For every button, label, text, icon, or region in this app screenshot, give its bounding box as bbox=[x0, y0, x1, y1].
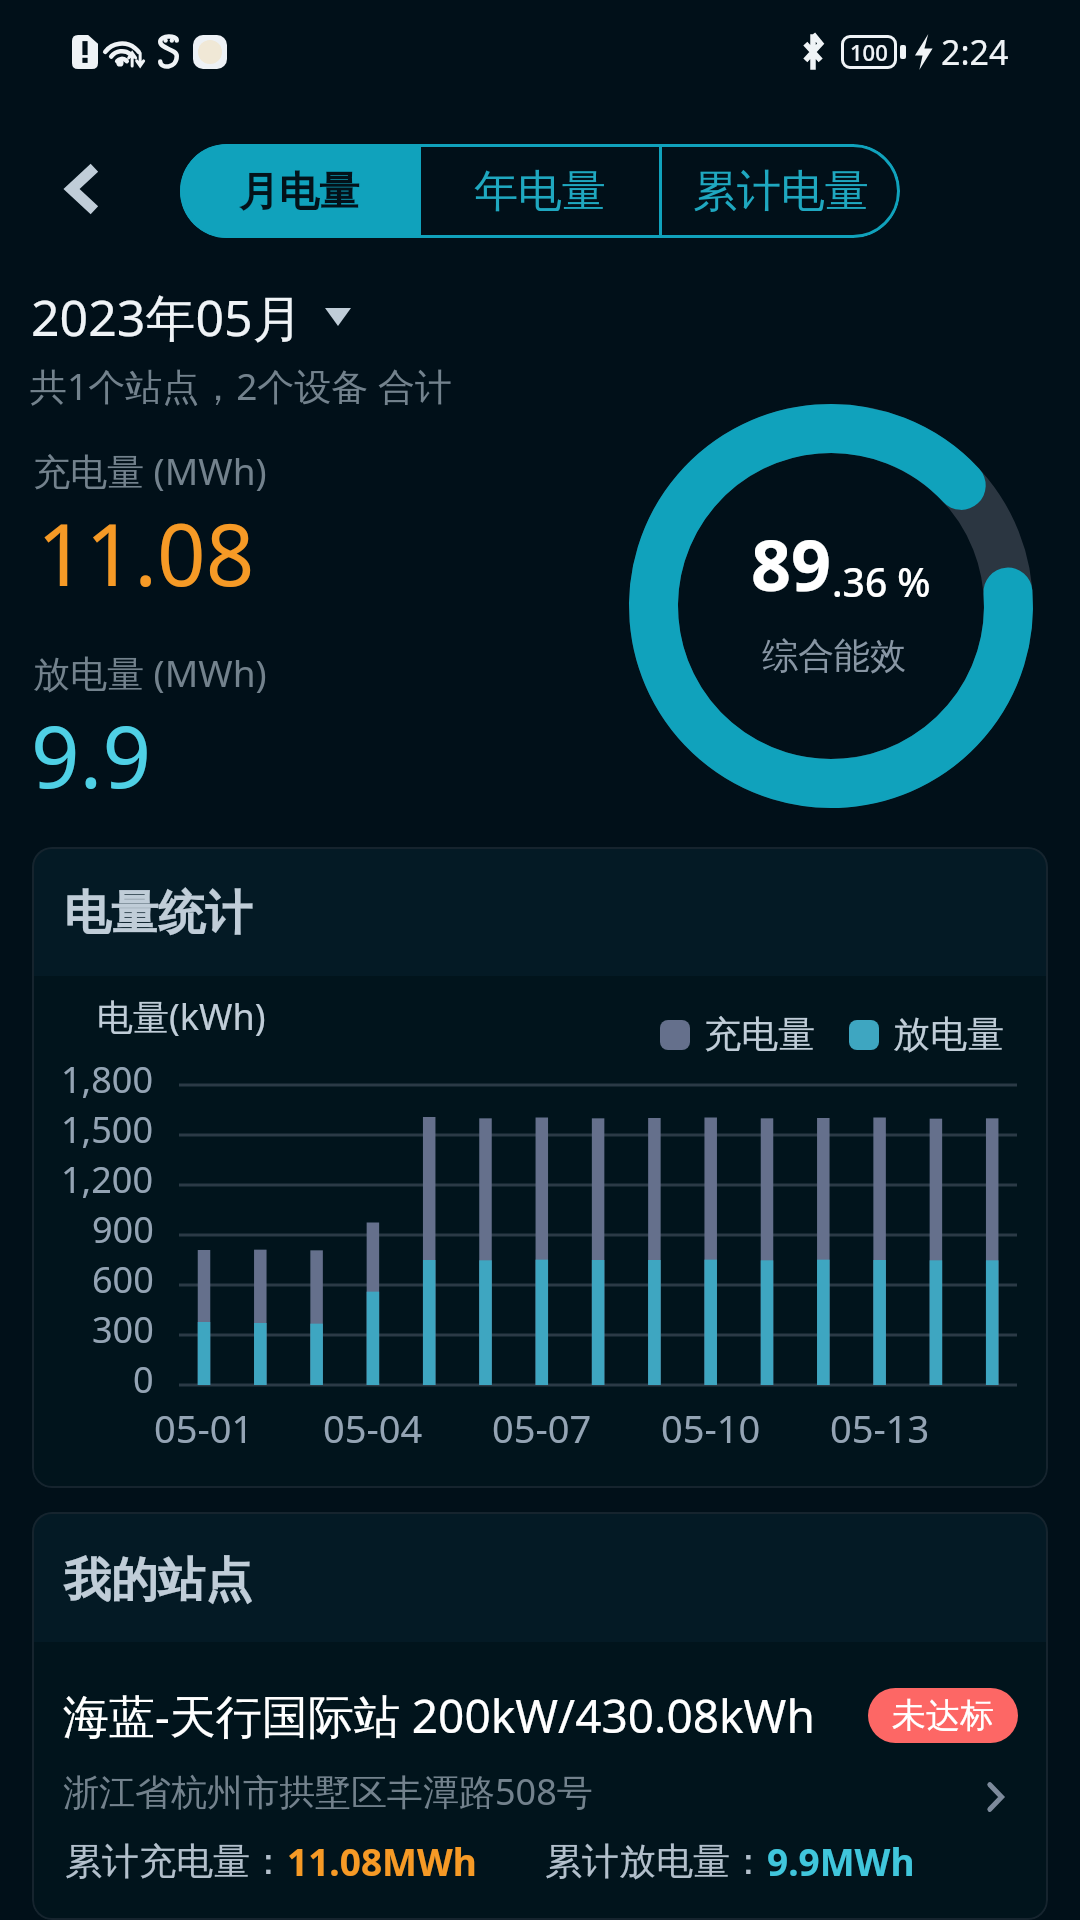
staticText: 年电量 bbox=[474, 164, 606, 219]
staticText: 电量(kWh) bbox=[97, 992, 266, 1041]
staticText: 1,500 bbox=[61, 1105, 154, 1154]
staticText: 我的站点 bbox=[64, 1551, 252, 1610]
staticText: 05-13 bbox=[830, 1402, 930, 1454]
staticText: 9.9MWh bbox=[767, 1836, 915, 1886]
staticText: 月电量 bbox=[239, 166, 359, 216]
button[interactable]: 年电量 bbox=[421, 144, 659, 238]
staticText: 放电量 bbox=[893, 1011, 1004, 1058]
button[interactable]: 2023年05月 bbox=[31, 283, 351, 351]
button[interactable]: 海蓝-天行国际站 200kW/430.08kWh bbox=[32, 1642, 1048, 1886]
staticText: 89 bbox=[751, 516, 832, 611]
staticText: 2023年05月 bbox=[31, 283, 303, 351]
staticText: .36 % bbox=[832, 555, 931, 608]
button[interactable]: 月电量 bbox=[180, 144, 418, 238]
staticText: 300 bbox=[92, 1305, 154, 1354]
staticText: 共1个站点，2个设备 合计 bbox=[30, 360, 452, 411]
staticText: 充电量 (MWh) bbox=[33, 445, 267, 496]
staticText: 2:24 bbox=[941, 29, 1009, 75]
staticText: 海蓝-天行国际站 200kW/430.08kWh bbox=[63, 1684, 815, 1747]
staticText: 1,200 bbox=[61, 1155, 154, 1204]
staticText: 未达标 bbox=[892, 1694, 994, 1737]
staticText: 充电量 bbox=[704, 1011, 815, 1058]
button[interactable]: 累计电量 bbox=[662, 144, 900, 238]
staticText: 电量统计 bbox=[64, 884, 252, 943]
staticText: 累计电量 bbox=[693, 164, 869, 219]
staticText: 0 bbox=[133, 1355, 154, 1404]
staticText: 11.08 bbox=[37, 495, 255, 611]
staticText: 900 bbox=[92, 1205, 154, 1254]
staticText: 1,800 bbox=[61, 1055, 154, 1104]
staticText: 9.9 bbox=[31, 697, 152, 813]
staticText: 05-01 bbox=[154, 1402, 254, 1454]
staticText: 05-07 bbox=[492, 1402, 592, 1454]
staticText: 放电量 (MWh) bbox=[33, 647, 267, 698]
staticText: 浙江省杭州市拱墅区丰潭路508号 bbox=[63, 1767, 593, 1816]
staticText: 05-04 bbox=[323, 1402, 423, 1454]
staticText: 11.08MWh bbox=[287, 1836, 477, 1886]
staticText: 100 bbox=[850, 37, 888, 67]
staticText: 05-10 bbox=[661, 1402, 761, 1454]
button[interactable]: Back bbox=[42, 147, 126, 231]
staticText: 累计放电量： bbox=[545, 1838, 767, 1885]
staticText: 600 bbox=[92, 1255, 154, 1304]
staticText: 综合能效 bbox=[762, 633, 906, 678]
staticText: 累计充电量： bbox=[65, 1838, 287, 1885]
